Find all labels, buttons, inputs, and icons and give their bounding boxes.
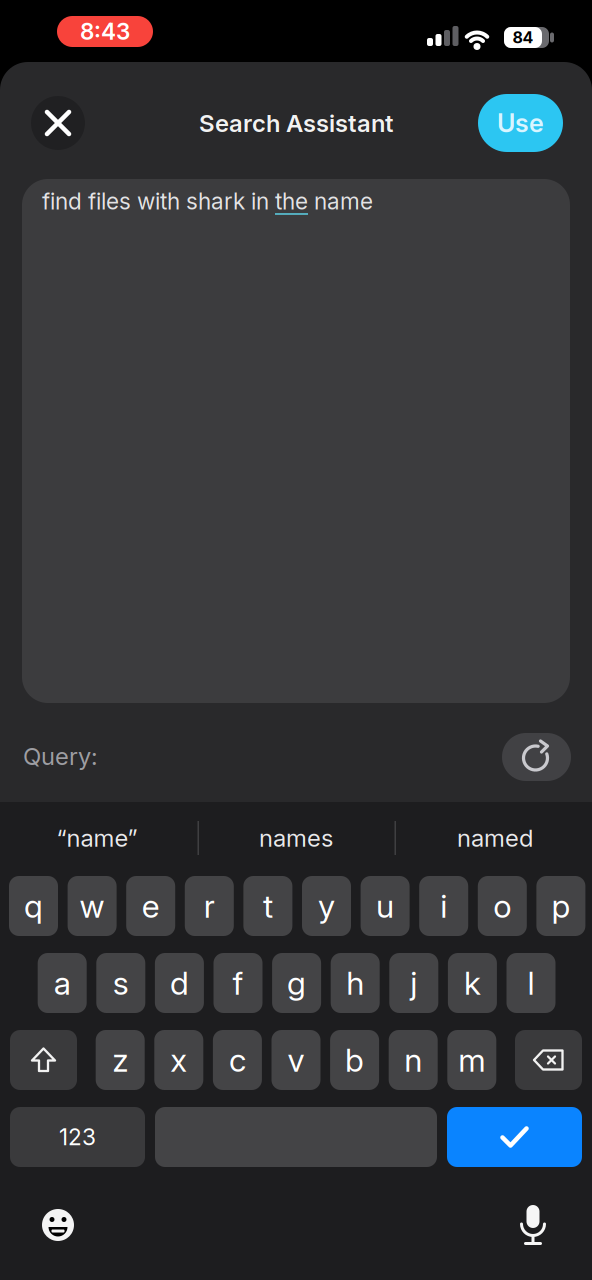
button[interactable]: 123: [10, 1107, 145, 1167]
staticText: 84: [512, 28, 533, 47]
staticText: x: [170, 1041, 187, 1079]
button[interactable]: g: [272, 953, 321, 1013]
staticText: r: [204, 887, 215, 925]
button[interactable]: l: [506, 953, 555, 1013]
button[interactable]: names: [201, 816, 391, 860]
button[interactable]: v: [271, 1030, 320, 1090]
button[interactable]: h: [331, 953, 380, 1013]
staticText: k: [464, 964, 481, 1002]
button[interactable]: x: [154, 1030, 203, 1090]
staticText: Query:: [23, 742, 98, 770]
staticText: 123: [59, 1124, 96, 1150]
staticText: t: [263, 887, 273, 925]
button[interactable]: d: [155, 953, 204, 1013]
staticText: n: [404, 1041, 422, 1079]
staticText: s: [113, 964, 129, 1002]
staticText: z: [112, 1041, 128, 1079]
button[interactable]: n: [389, 1030, 438, 1090]
staticText: e: [142, 887, 160, 925]
staticText: y: [318, 887, 335, 925]
button[interactable]: f: [213, 953, 262, 1013]
staticText: m: [458, 1041, 485, 1079]
button[interactable]: k: [448, 953, 497, 1013]
button[interactable]: [511, 1201, 555, 1245]
staticText: g: [287, 964, 306, 1002]
staticText: d: [170, 964, 189, 1002]
button[interactable]: [515, 1030, 582, 1090]
staticText: 8:43: [80, 18, 130, 45]
staticText: b: [345, 1041, 364, 1079]
staticText: l: [527, 964, 534, 1002]
staticText: f: [232, 964, 243, 1002]
staticText: q: [24, 887, 43, 925]
button[interactable]: 8:43: [57, 16, 153, 47]
staticText: u: [376, 887, 394, 925]
button[interactable]: z: [96, 1030, 145, 1090]
button[interactable]: Use: [478, 94, 563, 152]
button[interactable]: [36, 1203, 80, 1247]
button[interactable]: y: [302, 876, 351, 936]
staticText: o: [493, 887, 511, 925]
staticText: “name”: [56, 824, 137, 852]
staticText: c: [229, 1041, 246, 1079]
staticText: Search Assistant: [199, 109, 393, 137]
button[interactable]: p: [536, 876, 585, 936]
button[interactable]: u: [361, 876, 410, 936]
button[interactable]: c: [213, 1030, 262, 1090]
staticText: Use: [497, 108, 544, 138]
staticText: names: [259, 824, 333, 852]
button[interactable]: e: [126, 876, 175, 936]
button[interactable]: s: [96, 953, 145, 1013]
staticText: j: [410, 964, 417, 1002]
staticText: a: [54, 964, 71, 1002]
staticText: w: [80, 887, 105, 925]
button[interactable]: w: [68, 876, 117, 936]
button[interactable]: named: [400, 816, 590, 860]
button[interactable]: i: [419, 876, 468, 936]
staticText: named: [457, 824, 533, 852]
button[interactable]: [10, 1030, 77, 1090]
button[interactable]: b: [330, 1030, 379, 1090]
staticText: v: [287, 1041, 304, 1079]
button[interactable]: t: [243, 876, 292, 936]
button[interactable]: r: [185, 876, 234, 936]
button[interactable]: “name”: [2, 816, 192, 860]
staticText: h: [346, 964, 364, 1002]
staticText: i: [440, 887, 447, 925]
button[interactable]: [447, 1107, 582, 1167]
button[interactable]: m: [447, 1030, 496, 1090]
button[interactable]: j: [389, 953, 438, 1013]
button[interactable]: [31, 96, 85, 150]
button[interactable]: q: [9, 876, 58, 936]
button[interactable]: o: [478, 876, 527, 936]
staticText: find files with shark in the name: [42, 188, 373, 215]
button[interactable]: [502, 733, 571, 781]
staticText: p: [551, 887, 570, 925]
button[interactable]: a: [38, 953, 87, 1013]
